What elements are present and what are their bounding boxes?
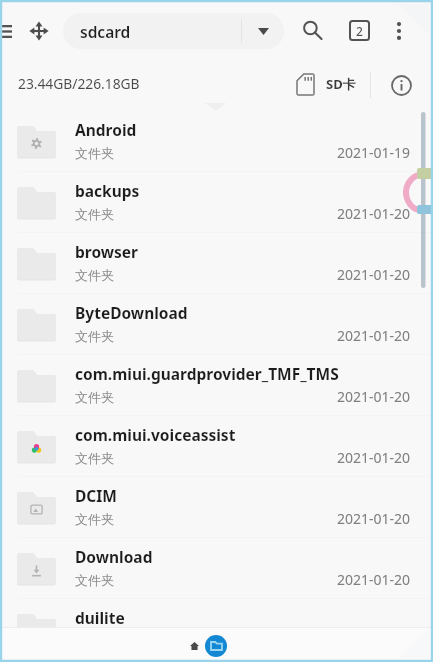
staticText: 2021-01-20	[337, 204, 411, 223]
staticText: 文件夹	[75, 145, 114, 161]
button[interactable]: browser	[0, 233, 433, 294]
staticText: 文件夹	[75, 572, 114, 588]
staticText: 2021-01-20	[337, 387, 411, 406]
button[interactable]: DCIM	[0, 477, 433, 538]
staticText: 2021-01-20	[337, 265, 411, 284]
staticText: SD卡	[326, 75, 356, 93]
button[interactable]: Move	[22, 14, 56, 48]
staticText: DCIM	[75, 485, 117, 506]
button[interactable]: sdcard	[63, 13, 284, 49]
staticText: 2021-01-19	[337, 143, 411, 162]
staticText: 文件夹	[75, 267, 114, 283]
button[interactable]: Files	[205, 635, 227, 657]
button[interactable]: Menu	[0, 15, 18, 47]
staticText: com.miui.voiceassist	[75, 424, 236, 445]
staticText: Android	[75, 119, 137, 140]
button[interactable]: duilite	[0, 599, 433, 660]
button[interactable]: Download	[0, 538, 433, 599]
staticText: 2021-01-20	[337, 509, 411, 528]
button[interactable]: SD卡	[295, 68, 358, 100]
staticText: 2	[356, 23, 363, 39]
staticText: 23.44GB/226.18GB	[18, 74, 140, 93]
button[interactable]: Search	[296, 14, 329, 47]
staticText: 2021-01-20	[337, 326, 411, 345]
staticText: duilite	[75, 607, 125, 628]
button[interactable]: backups	[0, 172, 433, 233]
button[interactable]: More options	[382, 14, 415, 47]
staticText: sdcard	[80, 21, 241, 42]
button[interactable]: com.miui.guardprovider_TMF_TMS	[0, 355, 433, 416]
button[interactable]: ByteDownload	[0, 294, 433, 355]
staticText: 2021-01-20	[337, 448, 411, 467]
button[interactable]: Android	[0, 111, 433, 172]
staticText: 文件夹	[75, 389, 114, 405]
staticText: 文件夹	[75, 328, 114, 344]
button[interactable]: Tabs	[343, 14, 376, 47]
button[interactable]: com.miui.voiceassist	[0, 416, 433, 477]
staticText: 文件夹	[75, 511, 114, 527]
button[interactable]: Home	[183, 635, 205, 657]
staticText: com.miui.guardprovider_TMF_TMS	[75, 363, 339, 384]
staticText: ByteDownload	[75, 302, 188, 323]
staticText: 文件夹	[75, 206, 114, 222]
staticText: Download	[75, 546, 153, 567]
staticText: 2021-01-20	[337, 570, 411, 589]
button[interactable]: Storage info	[384, 68, 418, 102]
staticText: browser	[75, 241, 139, 262]
staticText: backups	[75, 180, 140, 201]
staticText: 文件夹	[75, 450, 114, 466]
